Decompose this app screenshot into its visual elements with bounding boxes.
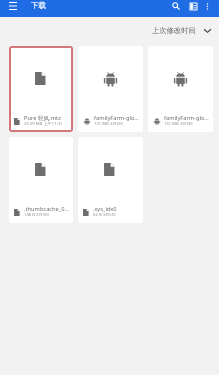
staticText: 62 B 3月5日 (93, 212, 116, 218)
staticText: 131 MB 3月6日 (94, 121, 124, 127)
button[interactable]: Pure 轻风.mtz (9, 46, 73, 132)
button[interactable]: View mode (185, 0, 201, 14)
button[interactable]: More options (200, 0, 214, 13)
staticText: 148 B 3月5日 (24, 212, 50, 218)
staticText: familyFarm-glo… (164, 114, 209, 122)
staticText: 上次修改时间 (152, 26, 196, 35)
staticText: 20.99 MB 上午11:31 (24, 121, 63, 127)
staticText: 151 MB 3月5日 (164, 121, 194, 127)
staticText: 下载 (31, 1, 46, 10)
staticText: .thumbcache_0… (24, 205, 70, 213)
button[interactable]: Search (168, 0, 184, 14)
staticText: familyFarm-glo… (94, 114, 139, 122)
button[interactable]: familyFarm-glo… (148, 46, 213, 132)
staticText: .sys_idx0 (93, 205, 117, 213)
button[interactable]: 上次修改时间 (152, 26, 212, 35)
button[interactable]: familyFarm-glo… (78, 46, 143, 132)
button[interactable]: Menu (6, 0, 19, 12)
button[interactable]: .thumbcache_0… (9, 137, 73, 223)
button[interactable]: .sys_idx0 (78, 137, 143, 223)
staticText: Pure 轻风.mtz (24, 114, 61, 122)
